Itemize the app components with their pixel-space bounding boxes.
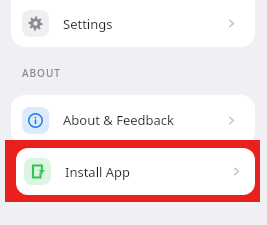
other: Open Settings (226, 18, 237, 29)
staticText: ABOUT (22, 66, 61, 80)
other: Open Install App (231, 166, 242, 177)
staticText: About & Feedback (63, 111, 175, 129)
button[interactable]: Settings (11, 0, 255, 47)
other: Open About & Feedback (226, 115, 237, 126)
staticText: Install App (65, 163, 131, 181)
staticText: Settings (63, 15, 113, 33)
button[interactable]: About & Feedback (11, 95, 255, 145)
button[interactable]: Install App (16, 148, 255, 195)
